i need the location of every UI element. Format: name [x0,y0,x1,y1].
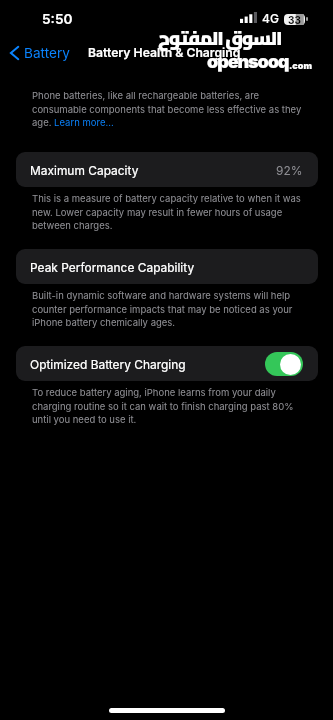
button[interactable]: Optimized Battery Charging [16,346,318,381]
staticText: السوق المفتوح [158,20,282,56]
staticText: To reduce battery aging, iPhone learns f… [32,387,303,425]
staticText: This is a measure of battery capacity re… [32,193,303,231]
staticText: opensooq [207,51,289,73]
button[interactable]: Battery [6,41,74,65]
staticText: 5:50 [42,11,73,27]
staticText: .com [289,60,312,71]
staticText: Battery [24,45,70,61]
staticText: Phone batteries, like all rechargeable b… [32,90,304,128]
staticText: Optimized Battery Charging [30,357,186,371]
button[interactable]: Peak Performance Capability [16,249,318,284]
staticText: Built-in dynamic software and hardware s… [32,290,303,328]
button[interactable]: Optimized Battery Charging toggle [265,352,303,376]
staticText: Battery Health & Charging [88,45,241,60]
staticText: Maximum Capacity [30,163,139,177]
staticText: 33 [288,14,301,26]
staticText: 92% [276,163,303,177]
button[interactable]: Maximum Capacity [16,152,318,187]
staticText: Peak Performance Capability [30,260,195,274]
staticText: 4G [262,11,279,26]
